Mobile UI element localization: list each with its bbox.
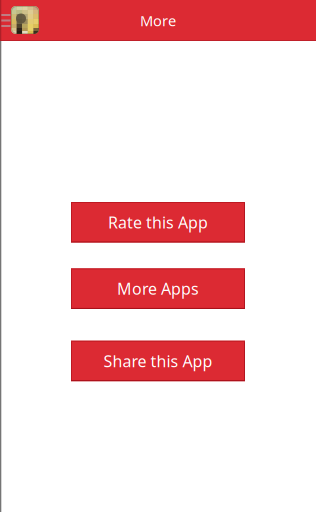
button[interactable]: More Apps xyxy=(71,268,245,309)
button[interactable]: Rate this App xyxy=(71,202,245,242)
button[interactable]: Home xyxy=(11,0,51,41)
button[interactable]: Share this App xyxy=(71,341,245,381)
staticText: More Apps xyxy=(117,278,199,299)
staticText: More xyxy=(140,11,176,30)
staticText: Share this App xyxy=(103,350,212,371)
staticText: Rate this App xyxy=(108,212,208,233)
button[interactable]: Open navigation menu xyxy=(0,0,11,41)
